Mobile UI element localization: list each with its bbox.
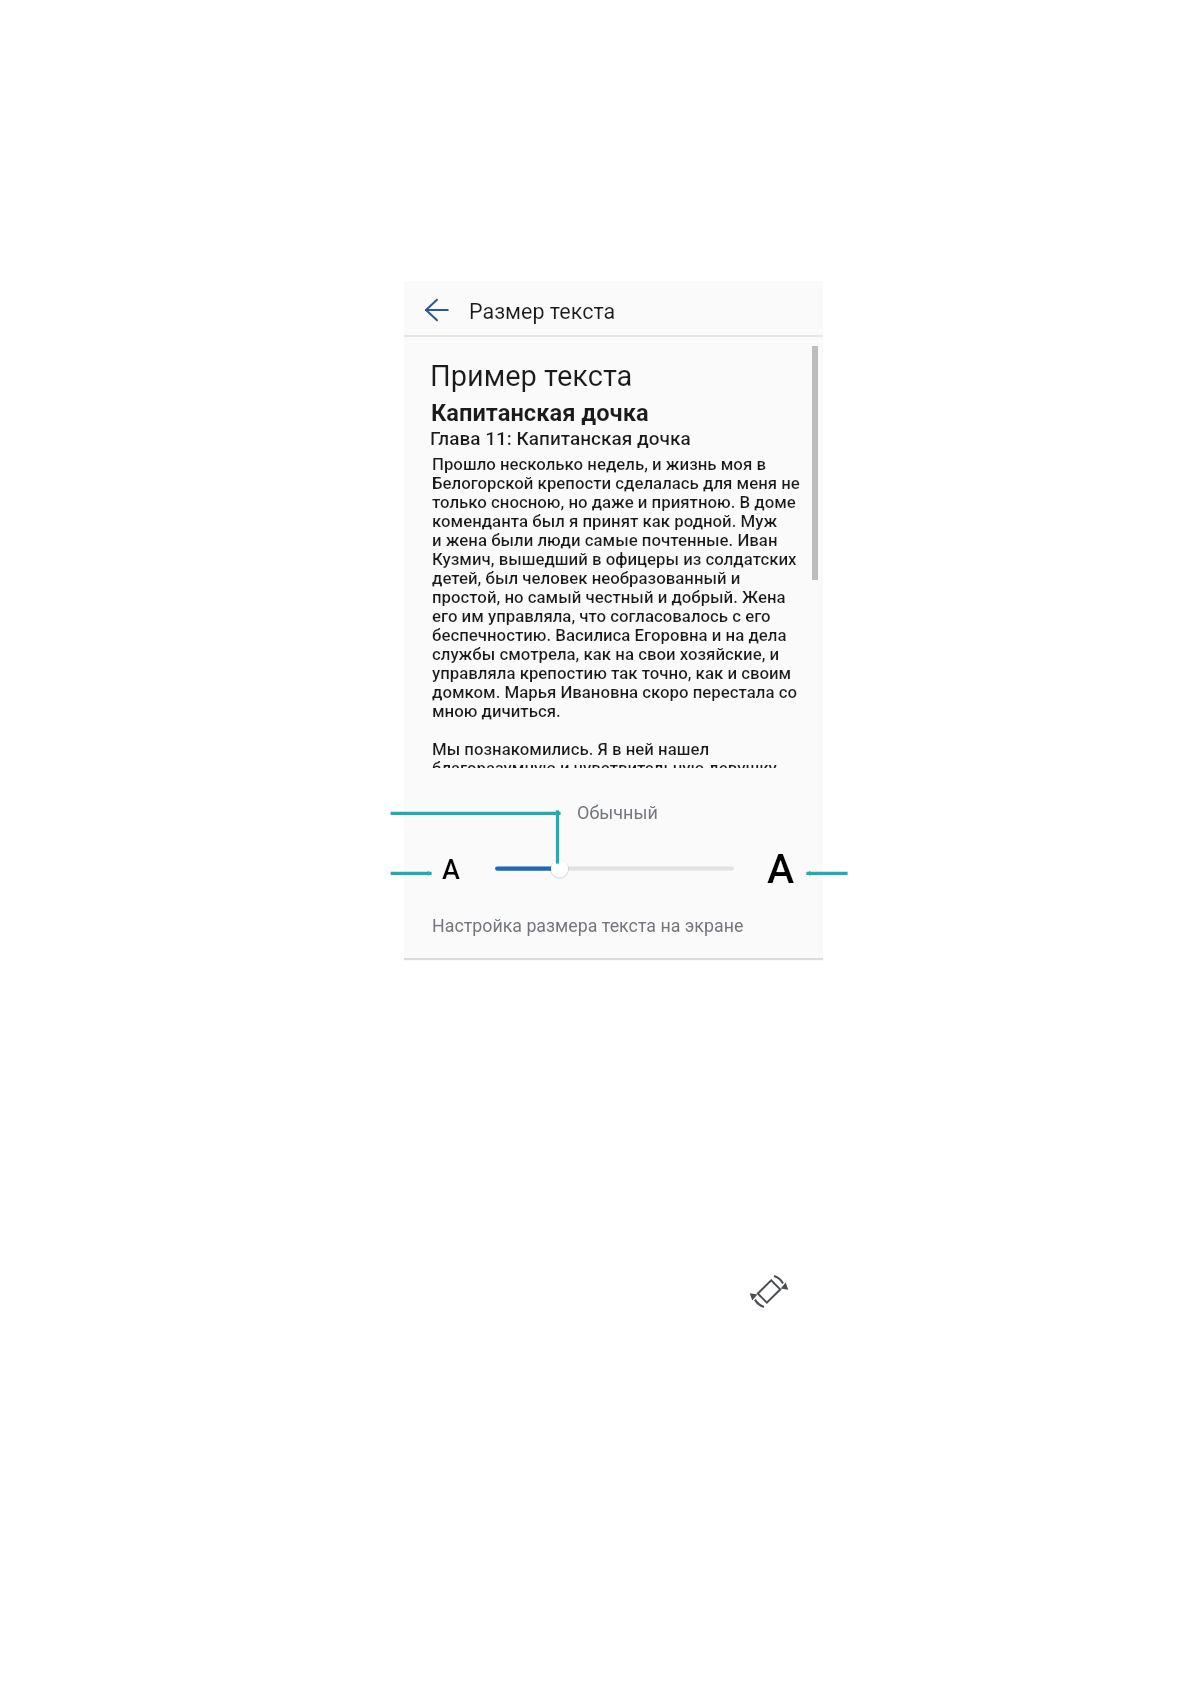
staticText: Настройка размера текста на экране <box>432 915 744 936</box>
staticText: A <box>767 845 795 893</box>
button[interactable]: Text size slider <box>484 854 746 884</box>
staticText: Капитанская дочка <box>431 399 649 427</box>
staticText: Прошло несколько недель, и жизнь моя в Б… <box>432 454 800 768</box>
button[interactable]: Rotate screen <box>739 1262 800 1323</box>
staticText: Глава 11: Капитанская дочка <box>430 427 691 449</box>
staticText: Обычный <box>577 802 658 823</box>
button[interactable]: Back <box>415 299 459 343</box>
staticText: Размер текста <box>469 299 616 324</box>
button[interactable] <box>404 281 823 336</box>
staticText: A <box>442 854 460 886</box>
staticText: Пример текста <box>430 359 633 393</box>
